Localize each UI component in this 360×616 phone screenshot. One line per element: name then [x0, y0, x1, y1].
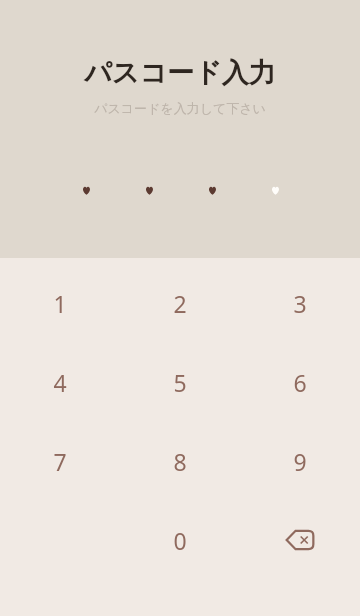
- button[interactable]: 3: [240, 280, 360, 326]
- staticText: 0: [173, 525, 187, 556]
- button[interactable]: 0: [120, 517, 240, 563]
- staticText: 7: [53, 446, 67, 477]
- staticText: 1: [53, 288, 67, 319]
- button[interactable]: 1: [0, 280, 120, 326]
- button[interactable]: 5: [120, 359, 240, 405]
- staticText: 2: [173, 288, 187, 319]
- staticText: 5: [173, 367, 187, 398]
- button[interactable]: 9: [240, 438, 360, 484]
- staticText: 3: [293, 288, 307, 319]
- button[interactable]: 2: [120, 280, 240, 326]
- button[interactable]: 7: [0, 438, 120, 484]
- button[interactable]: 6: [240, 359, 360, 405]
- staticText: パスコードを入力して下さい: [94, 100, 266, 116]
- button[interactable]: 8: [120, 438, 240, 484]
- button[interactable]: 4: [0, 359, 120, 405]
- staticText: 8: [173, 446, 187, 477]
- button[interactable]: Delete: [240, 517, 360, 563]
- staticText: 9: [293, 446, 307, 477]
- staticText: 6: [293, 367, 307, 398]
- staticText: パスコード入力: [84, 56, 276, 90]
- staticText: 4: [53, 367, 67, 398]
